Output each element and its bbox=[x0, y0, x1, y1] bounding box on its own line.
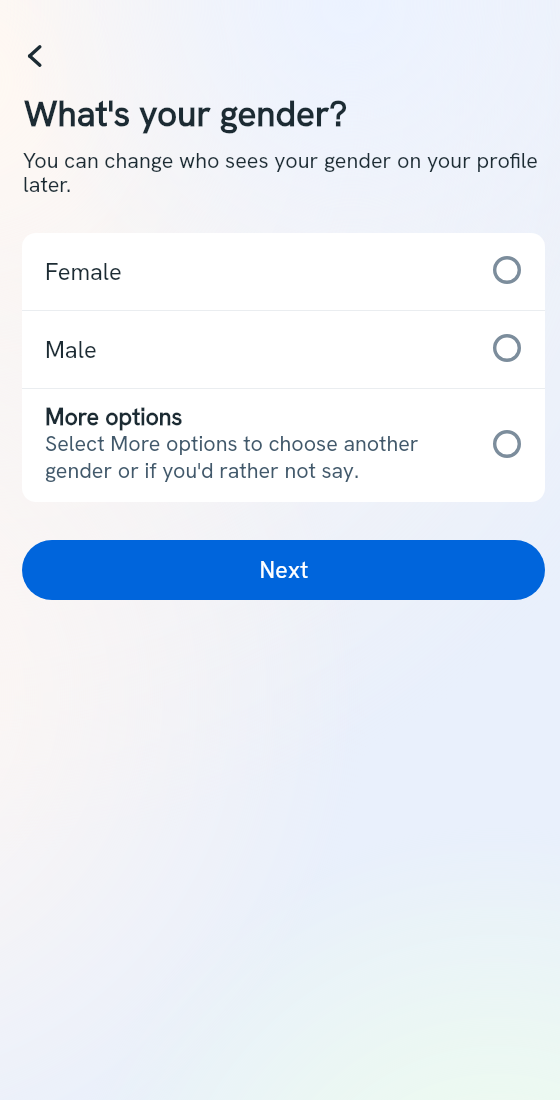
staticText: Male bbox=[45, 334, 97, 365]
button[interactable]: Male bbox=[22, 311, 545, 388]
button[interactable]: More options bbox=[22, 389, 545, 502]
button[interactable]: Back bbox=[9, 31, 58, 80]
staticText: Female bbox=[45, 256, 122, 287]
button[interactable]: Female bbox=[22, 233, 545, 310]
staticText: You can change who sees your gender on y… bbox=[23, 146, 540, 198]
button[interactable]: Next bbox=[22, 540, 545, 600]
staticText: What's your gender? bbox=[24, 95, 348, 135]
staticText: More options bbox=[45, 402, 183, 432]
staticText: Select More options to choose another ge… bbox=[45, 429, 483, 485]
staticText: Next bbox=[259, 555, 309, 585]
